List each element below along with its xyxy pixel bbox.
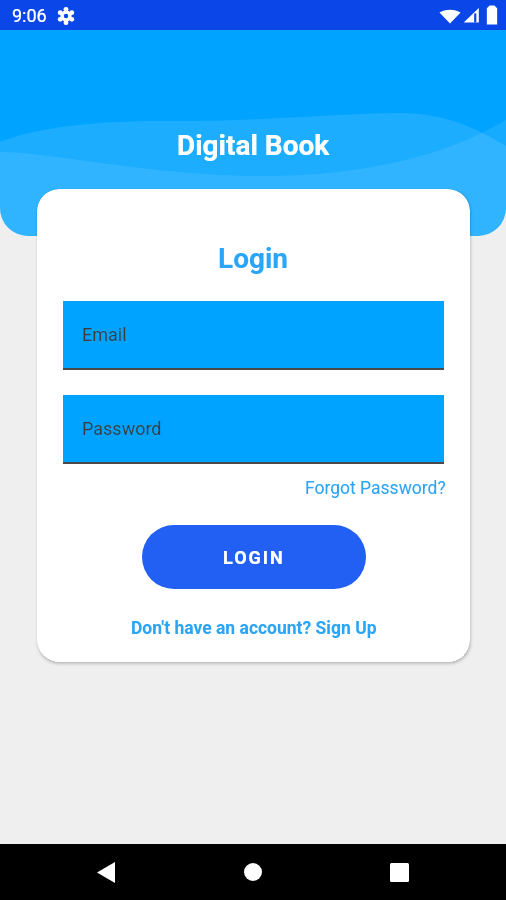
staticText: Password	[82, 418, 162, 439]
staticText: 9:06	[12, 5, 47, 26]
staticText: LOGIN	[223, 547, 285, 568]
staticText: Login	[218, 242, 289, 275]
staticText: Digital Book	[177, 129, 330, 162]
button[interactable]: Don't have an account? Sign Up	[131, 618, 377, 639]
button[interactable]: Forgot Password?	[305, 478, 446, 499]
button[interactable]: Recent apps	[375, 848, 423, 896]
button[interactable]: LOGIN	[142, 525, 366, 589]
staticText: Forgot Password?	[305, 478, 446, 499]
button[interactable]: Password	[63, 395, 444, 462]
button[interactable]: Back	[82, 848, 130, 896]
button[interactable]: Email	[63, 301, 444, 368]
staticText: Email	[82, 324, 127, 345]
button[interactable]: Home	[229, 848, 277, 896]
staticText: Don't have an account? Sign Up	[131, 618, 377, 639]
